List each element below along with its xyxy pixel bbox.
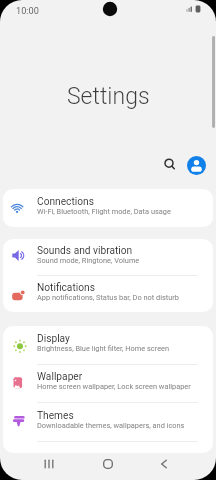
button[interactable]: Display bbox=[3, 326, 213, 364]
staticText: Sounds and vibration bbox=[37, 245, 133, 257]
staticText: Downloadable themes, wallpapers, and ico… bbox=[37, 421, 185, 430]
staticText: Wi-Fi, Bluetooth, Flight mode, Data usag… bbox=[37, 207, 171, 216]
staticText: Wallpaper bbox=[37, 371, 83, 383]
staticText: Home screen wallpaper, Lock screen wallp… bbox=[37, 382, 191, 391]
staticText: Notifications bbox=[37, 282, 95, 294]
staticText: Themes bbox=[37, 410, 74, 422]
staticText: App notifications, Status bar, Do not di… bbox=[37, 293, 179, 302]
button[interactable] bbox=[160, 154, 179, 173]
staticText: Brightness, Blue light filter, Home scre… bbox=[37, 344, 170, 353]
staticText: Sound mode, Ringtone, Volume bbox=[37, 256, 140, 265]
button[interactable]: Sounds and vibration bbox=[3, 239, 213, 275]
staticText: Settings bbox=[67, 83, 150, 110]
button[interactable] bbox=[144, 451, 216, 477]
button[interactable] bbox=[72, 451, 144, 477]
button[interactable] bbox=[187, 156, 206, 175]
button[interactable]: Wallpaper bbox=[3, 365, 213, 402]
button[interactable]: Notifications bbox=[3, 276, 213, 312]
staticText: Display bbox=[37, 333, 70, 345]
staticText: Connections bbox=[37, 196, 94, 208]
button[interactable]: Connections bbox=[3, 189, 213, 227]
staticText: 10:00 bbox=[16, 5, 39, 16]
button[interactable] bbox=[0, 451, 72, 477]
button[interactable]: Themes bbox=[3, 403, 213, 441]
